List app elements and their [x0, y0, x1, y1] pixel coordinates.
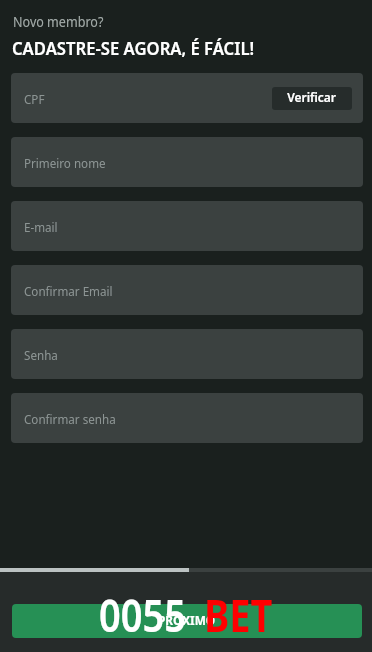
- button[interactable]: E-mail: [11, 201, 363, 251]
- staticText: PRÓXIMO: [158, 612, 216, 628]
- button[interactable]: Senha: [11, 329, 363, 379]
- staticText: Senha: [24, 346, 58, 364]
- staticText: Primeiro nome: [24, 154, 106, 172]
- staticText: CPF: [24, 90, 45, 108]
- button[interactable]: PRÓXIMO: [12, 604, 362, 638]
- staticText: 0055: [99, 584, 186, 645]
- staticText: Novo membro?: [13, 13, 104, 31]
- button[interactable]: Primeiro nome: [11, 137, 363, 187]
- staticText: BET: [204, 584, 273, 645]
- staticText: Confirmar Email: [24, 282, 113, 300]
- staticText: E-mail: [24, 218, 58, 236]
- staticText: Verificar: [287, 88, 337, 106]
- staticText: Confirmar senha: [24, 410, 116, 428]
- button[interactable]: CPF: [11, 73, 363, 123]
- button[interactable]: Confirmar senha: [11, 393, 363, 443]
- staticText: CADASTRE-SE AGORA, É FÁCIL!: [12, 36, 254, 61]
- button[interactable]: Confirmar Email: [11, 265, 363, 315]
- button[interactable]: Verificar: [272, 87, 352, 110]
